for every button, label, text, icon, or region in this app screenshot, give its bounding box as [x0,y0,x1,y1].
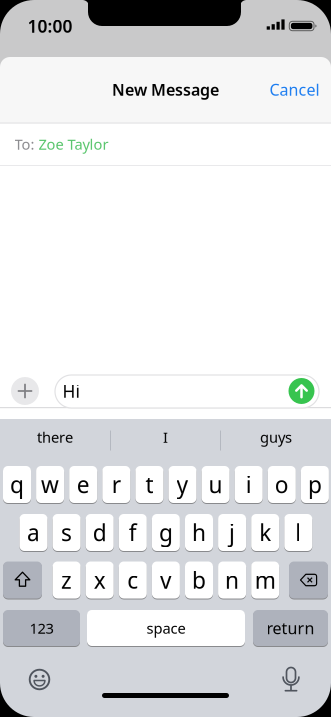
staticText: guys [260,427,292,447]
button[interactable]: r [102,466,130,503]
button[interactable]: guys [223,419,329,455]
staticText: s [61,517,72,547]
staticText: z [61,565,72,595]
button[interactable]: t [135,466,163,503]
staticText: w [41,469,59,499]
staticText: Cancel [269,79,319,100]
button[interactable]: there [2,419,108,455]
staticText: e [77,469,90,499]
button[interactable]: m [251,561,279,598]
staticText: d [93,517,107,547]
staticText: b [192,565,206,595]
button[interactable]: To: [0,123,331,165]
staticText: y [176,469,188,499]
staticText: there [37,427,73,447]
button[interactable]: w [36,466,64,503]
button[interactable]: p [301,466,329,503]
staticText: n [225,565,239,595]
button[interactable]: d [86,514,114,551]
button[interactable]: s [53,514,81,551]
button[interactable]: Send [288,378,314,404]
staticText: k [259,517,271,547]
staticText: Hi [62,379,79,402]
button[interactable]: return [253,610,328,646]
staticText: l [295,517,301,547]
button[interactable]: k [251,514,279,551]
button[interactable]: i [235,466,263,503]
button[interactable]: o [268,466,296,503]
staticText: space [146,618,185,638]
button[interactable]: 123 [3,610,80,646]
staticText: New Message [112,79,219,100]
staticText: m [255,565,276,595]
button[interactable]: h [185,514,213,551]
button[interactable]: space [87,610,245,646]
button[interactable]: Emoji [27,667,51,691]
button[interactable]: I [112,419,218,455]
button[interactable]: Add attachment [11,377,39,405]
button[interactable]: n [218,561,246,598]
button[interactable]: u [202,466,230,503]
button[interactable]: Delete [289,561,328,598]
staticText: i [246,469,252,499]
button[interactable]: q [3,466,31,503]
button[interactable]: b [185,561,213,598]
button[interactable]: l [284,514,312,551]
button[interactable]: e [69,466,97,503]
staticText: To: [14,134,34,154]
staticText: g [159,517,173,547]
staticText: f [129,517,137,547]
button[interactable]: g [152,514,180,551]
staticText: j [229,517,235,547]
button[interactable]: z [53,561,81,598]
button[interactable]: Shift [3,561,42,598]
staticText: a [27,517,40,547]
button[interactable]: v [152,561,180,598]
button[interactable]: x [86,561,114,598]
button[interactable]: c [119,561,147,598]
staticText: 123 [29,618,53,638]
staticText: o [275,469,289,499]
staticText: 10:00 [27,14,72,37]
staticText: Zoe Taylor [38,134,108,154]
button[interactable]: f [119,514,147,551]
staticText: I [163,427,168,447]
staticText: h [192,517,206,547]
staticText: u [209,469,223,499]
staticText: q [10,469,24,499]
staticText: c [127,565,138,595]
button[interactable]: Dictation [281,665,301,693]
staticText: return [266,617,314,639]
button[interactable]: Cancel [269,79,319,100]
button[interactable]: j [218,514,246,551]
staticText: p [308,469,322,499]
button[interactable]: y [168,466,196,503]
staticText: x [94,565,106,595]
button[interactable]: a [19,514,47,551]
staticText: t [145,469,153,499]
staticText: v [160,565,172,595]
staticText: r [112,469,121,499]
